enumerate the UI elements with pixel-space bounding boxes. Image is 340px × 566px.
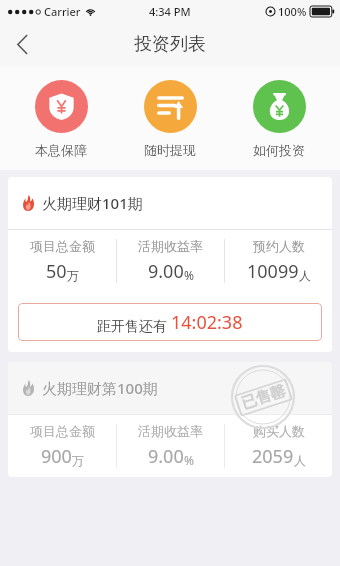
- button[interactable]: Back: [0, 22, 44, 66]
- staticText: 人: [299, 268, 311, 283]
- staticText: 9.00: [148, 259, 184, 284]
- staticText: 预约人数: [253, 238, 305, 254]
- staticText: 本息保障: [35, 142, 87, 158]
- staticText: 项目总金额: [30, 238, 95, 254]
- staticText: 人: [294, 453, 306, 468]
- staticText: 900: [41, 444, 72, 469]
- staticText: 距开售还有: [97, 316, 171, 335]
- staticText: 项目总金额: [30, 423, 95, 439]
- staticText: 已售罄: [239, 381, 288, 413]
- button[interactable]: 随时提现: [122, 80, 218, 158]
- staticText: 100%: [278, 4, 307, 19]
- staticText: 万: [72, 453, 84, 468]
- staticText: 投资列表: [134, 33, 206, 56]
- staticText: 9.00: [148, 444, 184, 469]
- button[interactable]: 本息保障: [13, 80, 109, 158]
- staticText: 万: [67, 268, 79, 283]
- staticText: %: [184, 452, 194, 468]
- staticText: 14:02:38: [171, 310, 243, 335]
- staticText: 活期收益率: [138, 238, 203, 254]
- button[interactable]: 距开售还有: [18, 303, 322, 341]
- staticText: 50: [46, 259, 67, 284]
- staticText: Carrier: [44, 4, 81, 19]
- button[interactable]: 火期理财第100期: [8, 362, 332, 477]
- staticText: %: [184, 267, 194, 283]
- staticText: 火期理财第100期: [42, 378, 158, 398]
- staticText: 如何投资: [253, 142, 305, 158]
- staticText: 2059: [252, 444, 294, 469]
- button[interactable]: 火期理财101期: [8, 177, 332, 352]
- staticText: 购买人数: [253, 423, 305, 439]
- button[interactable]: 如何投资: [231, 80, 327, 158]
- staticText: 随时提现: [144, 142, 196, 158]
- staticText: 4:34 PM: [149, 4, 191, 19]
- staticText: 10099: [247, 259, 299, 284]
- staticText: 活期收益率: [138, 423, 203, 439]
- staticText: 火期理财101期: [42, 193, 143, 213]
